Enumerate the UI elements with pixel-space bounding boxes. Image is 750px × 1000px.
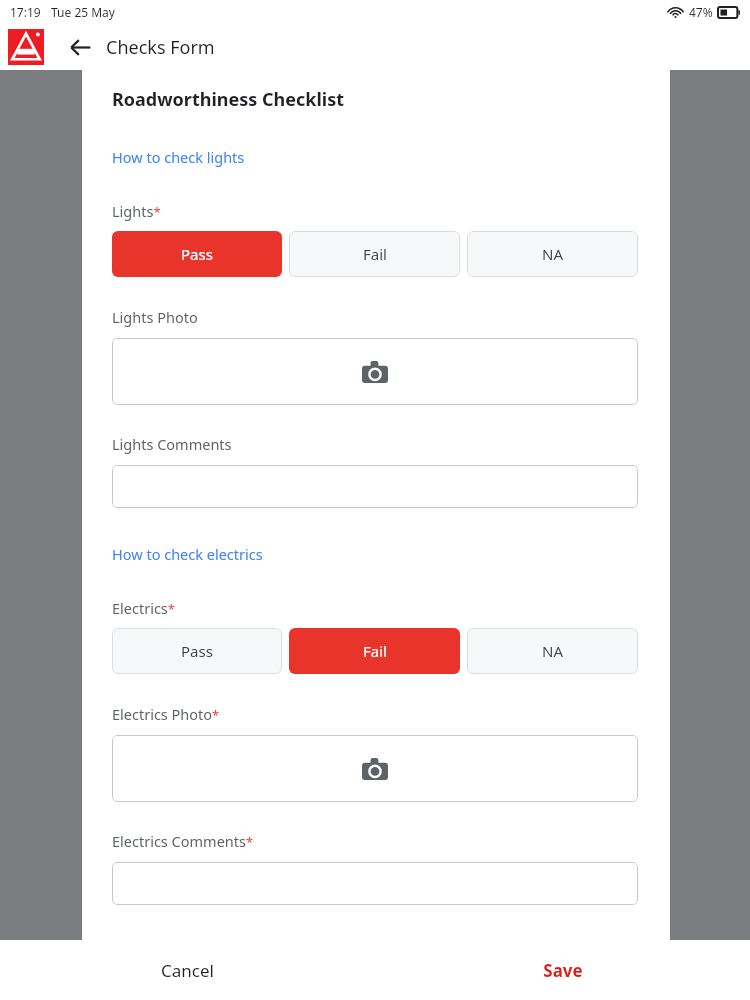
staticText: 47% bbox=[689, 4, 713, 20]
button[interactable]: Cancel bbox=[0, 940, 375, 1000]
button[interactable]: Save bbox=[375, 940, 750, 1000]
button[interactable]: Take photo bbox=[112, 735, 638, 802]
other: NTA logo bbox=[8, 29, 44, 65]
staticText: Save bbox=[543, 959, 583, 982]
button[interactable]: Take photo bbox=[112, 338, 638, 405]
staticText: Tue 25 May bbox=[51, 4, 115, 20]
staticText: Roadworthiness Checklist bbox=[112, 87, 345, 112]
staticText: NA bbox=[542, 244, 563, 264]
staticText: NA bbox=[542, 641, 563, 661]
button[interactable]: Fail bbox=[289, 231, 460, 277]
button[interactable]: Pass bbox=[112, 231, 282, 277]
staticText: Electrics Comments* bbox=[112, 831, 254, 851]
staticText: Electrics* bbox=[112, 598, 175, 618]
staticText: 17:19 bbox=[10, 4, 41, 20]
staticText: Lights* bbox=[112, 201, 161, 221]
staticText: Pass bbox=[181, 244, 213, 264]
staticText: Fail bbox=[363, 641, 387, 661]
staticText: Fail bbox=[363, 244, 387, 264]
button[interactable]: NA bbox=[467, 628, 638, 674]
staticText: Cancel bbox=[161, 959, 214, 982]
staticText: Lights Photo bbox=[112, 307, 198, 327]
button[interactable] bbox=[112, 465, 638, 508]
button[interactable]: Back bbox=[63, 30, 97, 64]
staticText: Electrics Photo* bbox=[112, 704, 220, 724]
button[interactable]: NA bbox=[467, 231, 638, 277]
button[interactable]: Fail bbox=[289, 628, 460, 674]
button[interactable]: How to check electrics bbox=[112, 544, 263, 564]
staticText: Checks Form bbox=[106, 35, 215, 60]
button[interactable]: How to check lights bbox=[112, 147, 245, 167]
button[interactable]: Pass bbox=[112, 628, 282, 674]
staticText: How to check lights bbox=[112, 147, 245, 167]
staticText: Pass bbox=[181, 641, 213, 661]
staticText: How to check electrics bbox=[112, 544, 263, 564]
staticText: Lights Comments bbox=[112, 434, 232, 454]
button[interactable] bbox=[112, 862, 638, 905]
